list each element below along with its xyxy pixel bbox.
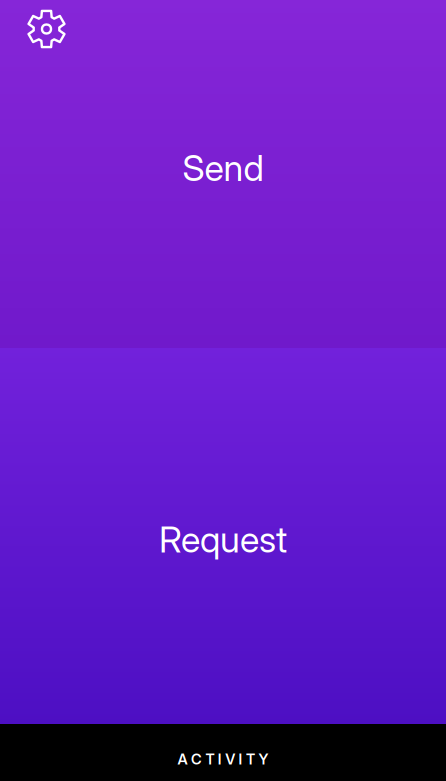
staticText: T: [205, 750, 214, 768]
button[interactable]: Send: [0, 0, 446, 348]
staticText: Send: [182, 146, 263, 190]
button[interactable]: Activity: [0, 724, 446, 781]
staticText: A: [178, 750, 188, 768]
staticText: I: [218, 750, 222, 768]
button[interactable]: Settings: [25, 8, 67, 50]
staticText: V: [225, 750, 235, 768]
staticText: C: [191, 750, 202, 768]
button[interactable]: Request: [0, 348, 446, 724]
staticText: I: [239, 750, 243, 768]
staticText: T: [246, 750, 255, 768]
group: ACTIVITY: [178, 750, 268, 768]
staticText: Request: [159, 518, 287, 561]
staticText: Y: [258, 750, 268, 768]
